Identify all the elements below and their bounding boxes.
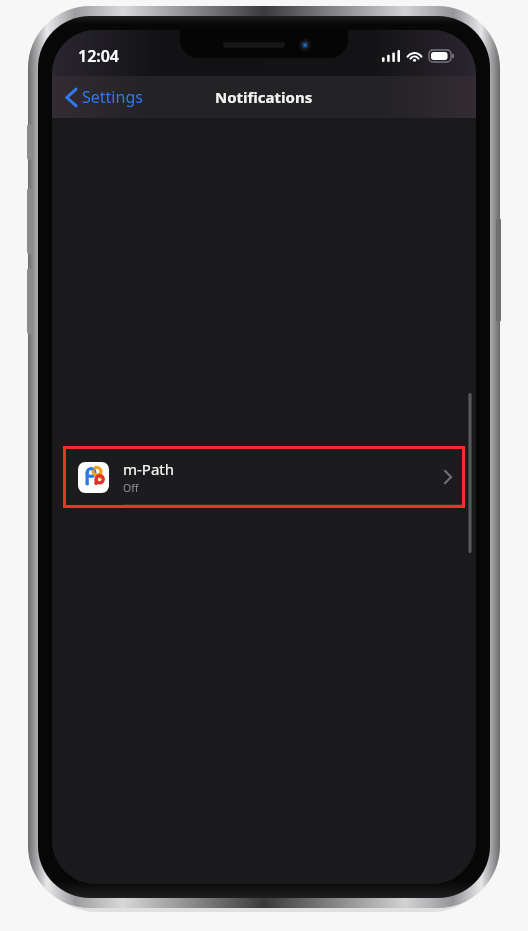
button[interactable]: Settings [52,80,155,114]
staticText: Notifications [215,87,313,107]
other: Open m-Path notification settings [444,470,452,484]
staticText: Settings [82,86,143,108]
staticText: Off [123,481,139,495]
staticText: m-Path [123,459,175,479]
button[interactable]: m-Path [66,449,462,505]
staticText: 12:04 [78,45,120,67]
